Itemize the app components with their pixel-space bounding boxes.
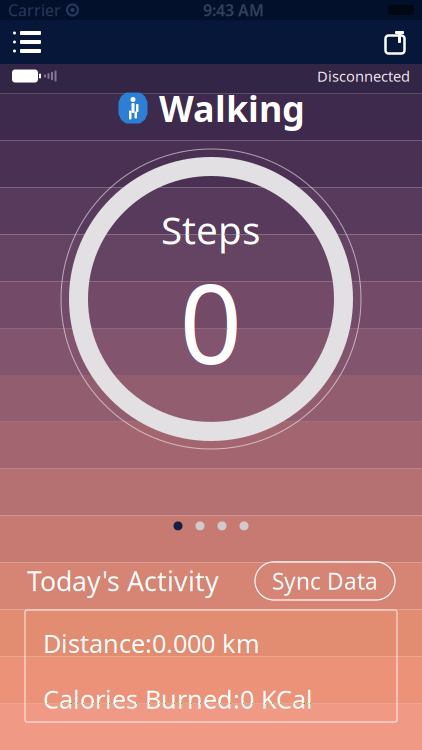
- staticText: Carrier: [8, 0, 61, 21]
- staticText: 0: [179, 249, 242, 394]
- button[interactable]: Share: [368, 20, 422, 64]
- button[interactable]: Menu: [0, 20, 54, 64]
- staticText: Calories Burned:0 KCal: [43, 682, 313, 716]
- button[interactable]: Sync Data: [255, 562, 395, 600]
- staticText: Today's Activity: [27, 563, 219, 599]
- staticText: Walking: [159, 84, 305, 132]
- staticText: Sync Data: [272, 566, 378, 596]
- staticText: Disconnected: [317, 66, 410, 86]
- staticText: Steps: [161, 204, 261, 255]
- staticText: Distance:0.000 km: [43, 626, 260, 660]
- staticText: 9:43 AM: [203, 0, 264, 21]
